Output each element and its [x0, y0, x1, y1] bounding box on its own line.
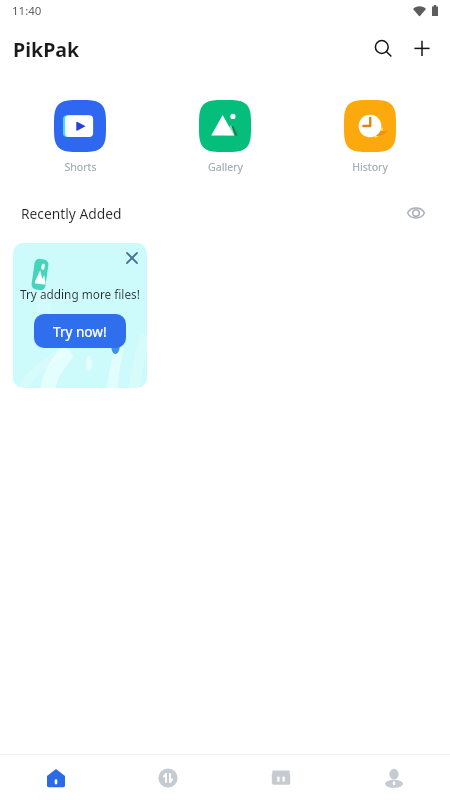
- staticText: Try adding more files!: [20, 286, 140, 302]
- button[interactable]: Close: [13, 243, 147, 388]
- button[interactable]: Files: [224, 755, 337, 800]
- button[interactable]: Show hidden files: [399, 196, 433, 230]
- button[interactable]: Try now!: [34, 314, 126, 348]
- button[interactable]: Home: [0, 755, 112, 800]
- staticText: Gallery: [208, 160, 243, 174]
- button[interactable]: Add: [400, 27, 444, 71]
- staticText: PikPak: [13, 36, 80, 63]
- button[interactable]: History: [325, 100, 415, 174]
- staticText: Try now!: [53, 322, 107, 341]
- staticText: Recently Added: [21, 204, 122, 223]
- staticText: Shorts: [64, 160, 97, 174]
- staticText: 11:40: [12, 3, 42, 19]
- button[interactable]: Account: [337, 755, 450, 800]
- button[interactable]: Close: [117, 243, 147, 272]
- button[interactable]: Search: [361, 27, 405, 71]
- button[interactable]: Gallery: [180, 100, 270, 174]
- button[interactable]: Shorts: [35, 100, 125, 174]
- button[interactable]: Transfers: [112, 755, 224, 800]
- staticText: History: [352, 160, 388, 174]
